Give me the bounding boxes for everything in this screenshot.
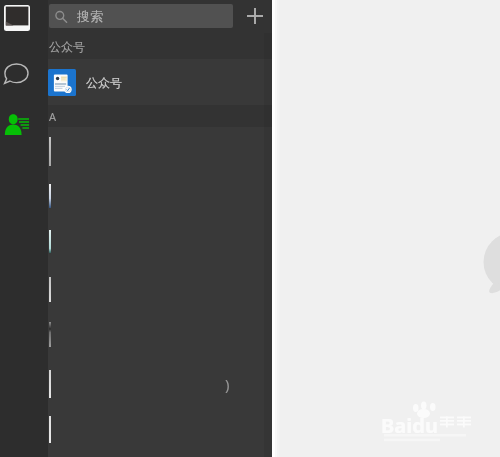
button[interactable]: 搜索 [49,4,233,28]
button[interactable]: Chats [3,59,31,87]
button[interactable] [48,219,272,265]
button[interactable]: 公众号 [48,59,272,105]
staticText: ) [225,374,230,394]
staticText: 公众号 [86,75,122,90]
button[interactable]: Add [243,4,267,28]
button[interactable] [48,312,272,358]
button[interactable] [48,267,272,313]
staticText: A [49,109,57,124]
staticText: Baidu [381,412,438,439]
button[interactable] [48,129,272,175]
staticText: 公众号 [49,39,85,54]
button[interactable] [48,407,272,453]
button[interactable] [48,173,272,219]
button[interactable] [48,361,272,407]
staticText: 搜索 [77,8,103,24]
button[interactable]: Profile [4,5,30,31]
button[interactable]: Contacts [3,110,31,138]
